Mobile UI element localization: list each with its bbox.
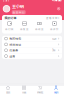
button[interactable]: 我的钱包	[2, 36, 62, 42]
button[interactable]: 待付款	[2, 21, 17, 31]
button[interactable]: 设置	[2, 53, 62, 59]
staticText: 3张	[52, 48, 56, 52]
staticText: 我的钱包	[9, 36, 21, 41]
button[interactable]: 收货地址	[2, 42, 62, 47]
staticText: 9:41	[3, 0, 10, 2]
button[interactable]: 待评价	[47, 21, 62, 31]
staticText: 会员中心	[13, 10, 25, 14]
staticText: ¥128	[52, 37, 56, 40]
button[interactable]: 优惠券	[2, 47, 62, 53]
button[interactable]: 分类	[16, 85, 32, 94]
button[interactable]: 我的	[48, 85, 64, 94]
staticText: 优惠券	[9, 48, 18, 52]
staticText: 分类	[22, 91, 26, 94]
staticText: 待发货	[20, 27, 29, 31]
button[interactable]: 购物车	[32, 85, 48, 94]
staticText: 查看全部	[46, 16, 58, 20]
staticText: 购物车	[37, 91, 43, 94]
staticText: 我的	[54, 91, 58, 94]
staticText: 设置	[9, 54, 15, 58]
button[interactable]: 我的订单	[2, 15, 62, 21]
button[interactable]: 待发货	[17, 21, 32, 31]
button[interactable]: 待收货	[32, 21, 47, 31]
staticText: 待评价	[50, 27, 59, 31]
staticText: 我的订单	[5, 16, 17, 20]
staticText: 首页	[6, 91, 10, 94]
button[interactable]: Profile photo	[3, 5, 10, 12]
staticText: 待收货	[35, 27, 44, 31]
staticText: 收货地址	[9, 42, 21, 46]
staticText: 待付款	[5, 27, 14, 31]
button[interactable]: 首页	[0, 85, 16, 94]
staticText: 王小明	[12, 3, 24, 9]
button[interactable]: Settings	[56, 6, 61, 11]
